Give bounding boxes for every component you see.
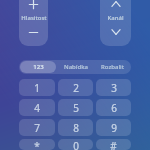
staticText: 9 <box>111 121 117 135</box>
button[interactable]: 123 <box>20 61 56 73</box>
staticText: Nabídka <box>64 63 88 71</box>
button[interactable]: 6 <box>96 99 131 116</box>
staticText: 1 <box>34 81 40 95</box>
staticText: 6 <box>111 101 117 115</box>
staticText: Rozbalit <box>101 63 124 71</box>
button[interactable]: * <box>19 139 55 150</box>
button[interactable]: 2 <box>58 79 93 96</box>
button[interactable]: # <box>96 139 131 150</box>
staticText: 8 <box>73 121 79 135</box>
staticText: 3 <box>111 81 117 95</box>
staticText: Kanál <box>107 14 124 22</box>
button[interactable]: Snížit hlasitost <box>19 22 48 42</box>
staticText: # <box>110 139 117 150</box>
staticText: 123 <box>33 63 44 71</box>
button[interactable]: 0 <box>58 139 93 150</box>
button[interactable]: Zvýšit hlasitost <box>19 0 48 46</box>
button[interactable]: Zvýšit hlasitost <box>19 0 48 14</box>
button[interactable]: Další kanál <box>100 0 131 46</box>
button[interactable]: Nabídka <box>58 61 93 73</box>
button[interactable]: 8 <box>58 119 93 136</box>
button[interactable]: Rozbalit <box>95 61 130 73</box>
button[interactable]: 1 <box>19 79 55 96</box>
button[interactable]: 7 <box>19 119 55 136</box>
staticText: * <box>34 139 40 150</box>
staticText: Hlasitost <box>21 14 47 22</box>
staticText: 5 <box>73 101 79 115</box>
staticText: 4 <box>34 101 40 115</box>
staticText: 2 <box>73 81 79 95</box>
button[interactable]: Předchozí kanál <box>100 22 131 42</box>
button[interactable]: 5 <box>58 99 93 116</box>
button[interactable]: 4 <box>19 99 55 116</box>
button[interactable]: 3 <box>96 79 131 96</box>
button[interactable]: Další kanál <box>100 0 131 14</box>
staticText: 0 <box>73 139 79 150</box>
button[interactable]: 9 <box>96 119 131 136</box>
staticText: 7 <box>34 121 40 135</box>
